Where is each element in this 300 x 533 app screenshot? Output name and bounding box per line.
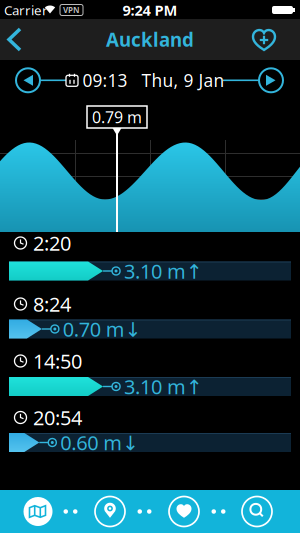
staticText: Carrier	[4, 1, 48, 19]
button[interactable]: Favourites	[168, 495, 200, 527]
staticText: 20:54	[33, 404, 82, 431]
staticText: Auckland	[106, 27, 194, 52]
staticText: 0.60 m↓	[60, 429, 139, 456]
staticText: 3.10 m↑	[124, 258, 203, 284]
button[interactable]: Search	[241, 495, 273, 527]
button[interactable]: Map	[22, 495, 54, 527]
staticText: 2:20	[33, 230, 71, 256]
button[interactable]: Pick date	[65, 69, 224, 92]
staticText: VPN	[63, 5, 80, 15]
staticText: 3.10 m↑	[124, 373, 203, 400]
staticText: Thu, 9 Jan	[141, 69, 224, 92]
button[interactable]: Locations	[94, 495, 126, 527]
button[interactable]: Next day	[258, 67, 284, 93]
staticText: 0.79 m	[92, 106, 142, 128]
staticText: 09:13	[82, 69, 127, 92]
button[interactable]: Previous day	[15, 67, 41, 93]
staticText: 0.70 m↓	[63, 316, 142, 342]
button[interactable]: Add to favourites	[249, 27, 279, 55]
staticText: 14:50	[33, 348, 82, 374]
staticText: 8:24	[33, 291, 71, 317]
button[interactable]: Back	[2, 23, 32, 56]
staticText: 9:24 PM	[122, 0, 177, 20]
